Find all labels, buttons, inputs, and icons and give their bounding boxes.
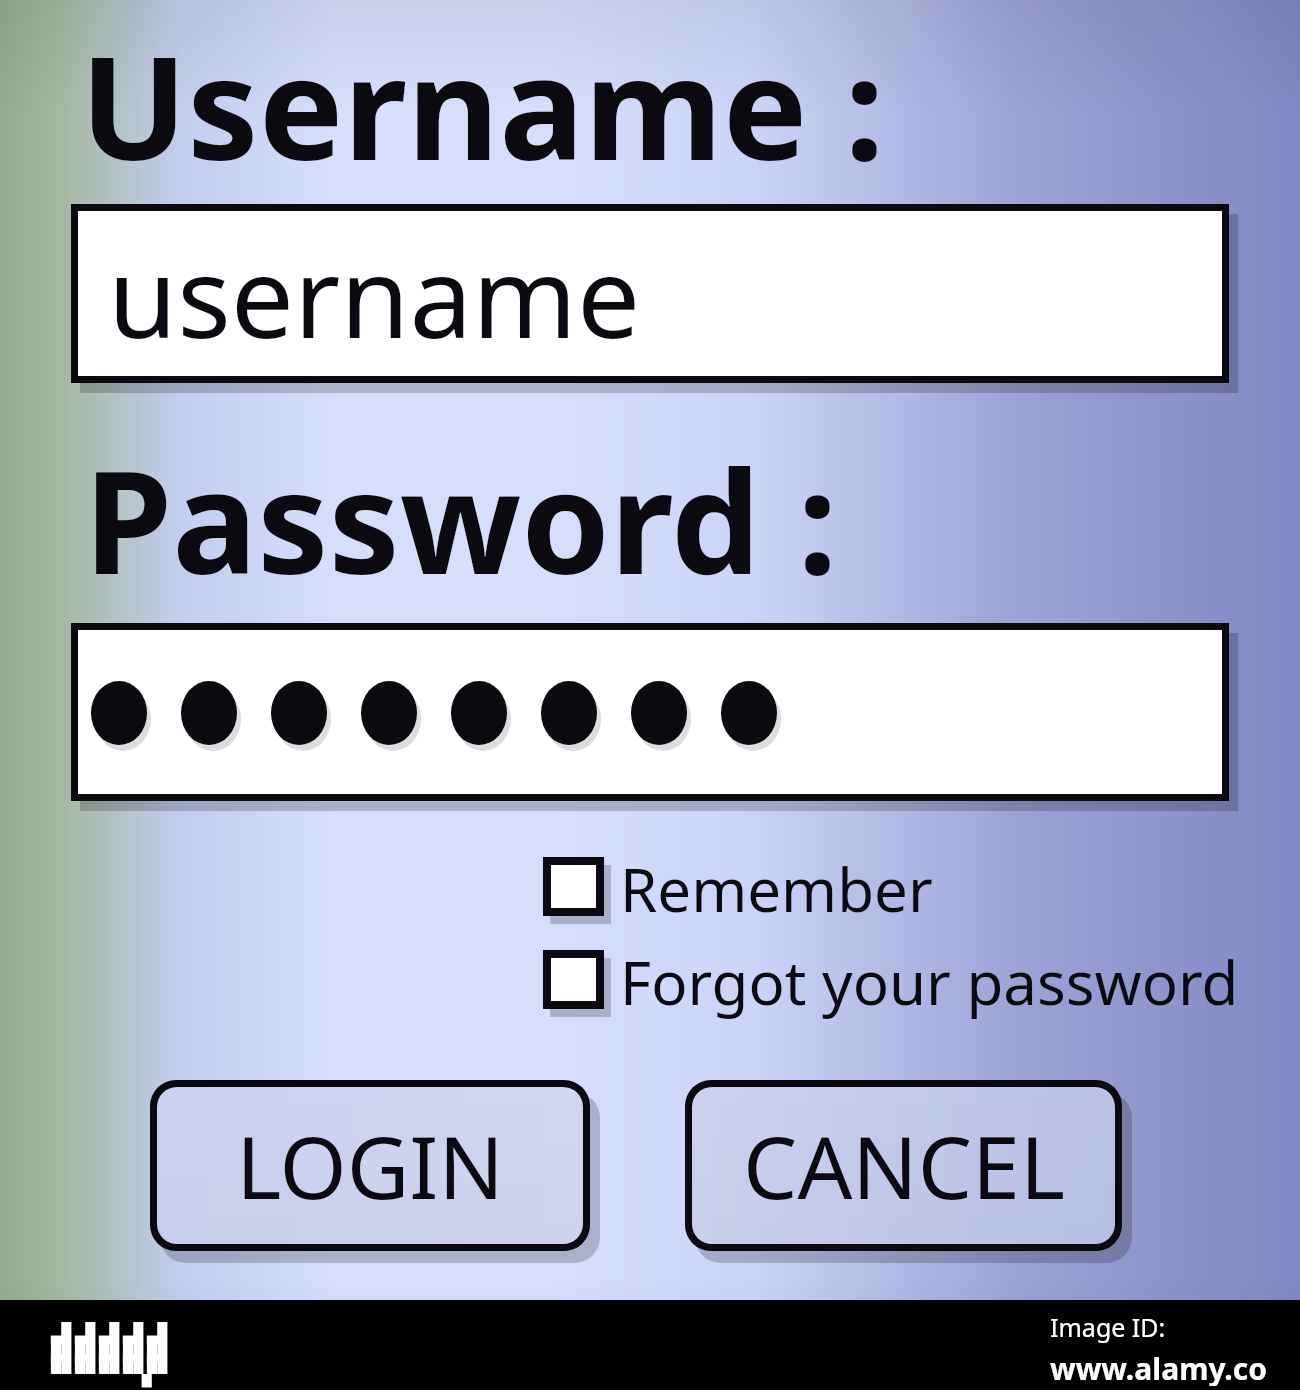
staticText: Remember password xyxy=(620,848,1220,926)
staticText: username xyxy=(108,218,641,371)
staticText: LOGIN xyxy=(236,1107,504,1224)
staticText: Image ID: EB5MCW xyxy=(1050,1310,1270,1346)
staticText: Forgot your password ? xyxy=(620,941,1240,1019)
button[interactable]: CANCEL xyxy=(685,1080,1122,1251)
button[interactable]: Username field xyxy=(108,216,1208,372)
staticText: www.alamy.com xyxy=(1050,1348,1270,1386)
button[interactable] xyxy=(543,848,1143,926)
staticText: Password : xyxy=(84,422,838,592)
button[interactable]: LOGIN xyxy=(150,1080,590,1251)
staticText: CANCEL xyxy=(743,1107,1065,1224)
button[interactable] xyxy=(543,941,1143,1019)
staticText: Username : xyxy=(80,8,885,178)
button[interactable]: Password field xyxy=(71,623,1229,801)
